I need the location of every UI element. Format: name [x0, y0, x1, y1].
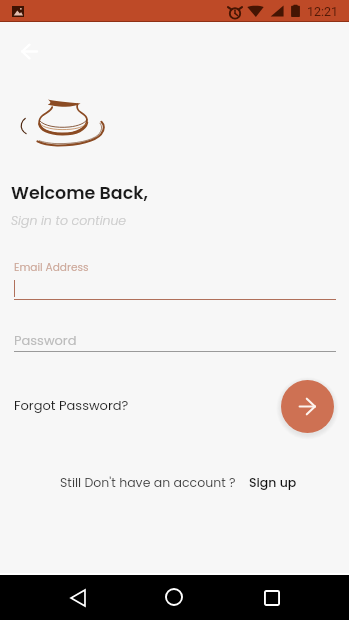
staticText: Sign in to continue: [11, 212, 127, 229]
button[interactable]: Recent apps: [252, 578, 292, 618]
staticText: 12:21: [307, 4, 339, 19]
staticText: Email Address: [14, 260, 89, 275]
staticText: Still Don't have an account ?: [60, 474, 236, 491]
button[interactable]: Sign in: [281, 380, 334, 433]
button[interactable]: Forgot Password?: [14, 396, 129, 414]
staticText: Password: [14, 331, 77, 349]
button[interactable]: Sign up: [249, 474, 297, 491]
button[interactable]: Back: [58, 578, 98, 618]
staticText: Welcome Back,: [11, 181, 148, 206]
button[interactable]: Home: [154, 577, 194, 617]
